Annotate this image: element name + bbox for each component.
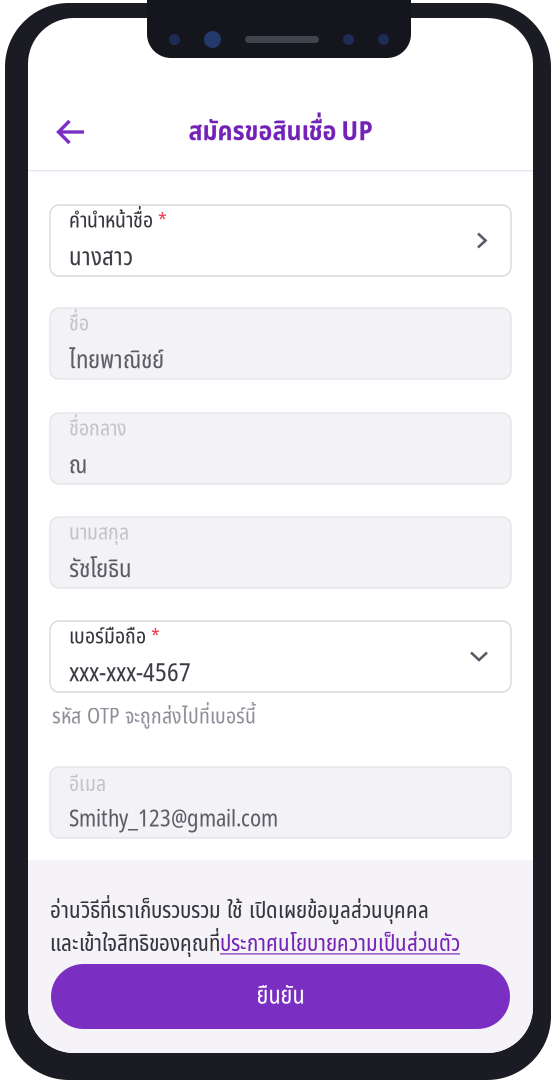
staticText: ชื่อกลาง: [69, 413, 127, 445]
staticText: ยืนยัน: [256, 978, 304, 1015]
staticText: *: [158, 206, 167, 236]
staticText: ไทยพาณิชย์: [69, 342, 164, 379]
staticText: สมัครขอสินเชื่อ UP: [188, 112, 372, 152]
button[interactable]: คำนำหน้าชื่อ: [50, 205, 511, 276]
staticText: คำนำหน้าชื่อ: [69, 205, 153, 237]
staticText: Smithy_123@gmail.com: [69, 802, 278, 837]
staticText: และเข้าใจสิทธิของคุณที่: [50, 927, 220, 961]
staticText: เบอร์มือถือ: [69, 621, 146, 653]
staticText: ชื่อ: [69, 308, 89, 340]
staticText: นามสกุล: [69, 517, 129, 549]
button[interactable]: ยืนยัน: [51, 964, 510, 1029]
staticText: รัชโยธิน: [69, 551, 132, 588]
staticText: *: [151, 622, 160, 652]
button[interactable]: เบอร์มือถือ: [50, 621, 511, 692]
staticText: ณ: [69, 447, 87, 484]
button[interactable]: Back: [43, 110, 99, 154]
staticText: นางสาว: [69, 239, 133, 276]
staticText: รหัส OTP จะถูกส่งไปที่เบอร์นี้: [52, 701, 256, 733]
staticText: อ่านวิธีที่เราเก็บรวบรวม ใช้ เปิดเผยข้อม…: [50, 894, 429, 928]
staticText: xxx-xxx-4567: [69, 655, 191, 692]
button[interactable]: ประกาศนโยบายความเป็นส่วนตัว: [220, 927, 460, 961]
staticText: อีเมล: [69, 768, 106, 800]
staticText: ประกาศนโยบายความเป็นส่วนตัว: [220, 927, 460, 961]
